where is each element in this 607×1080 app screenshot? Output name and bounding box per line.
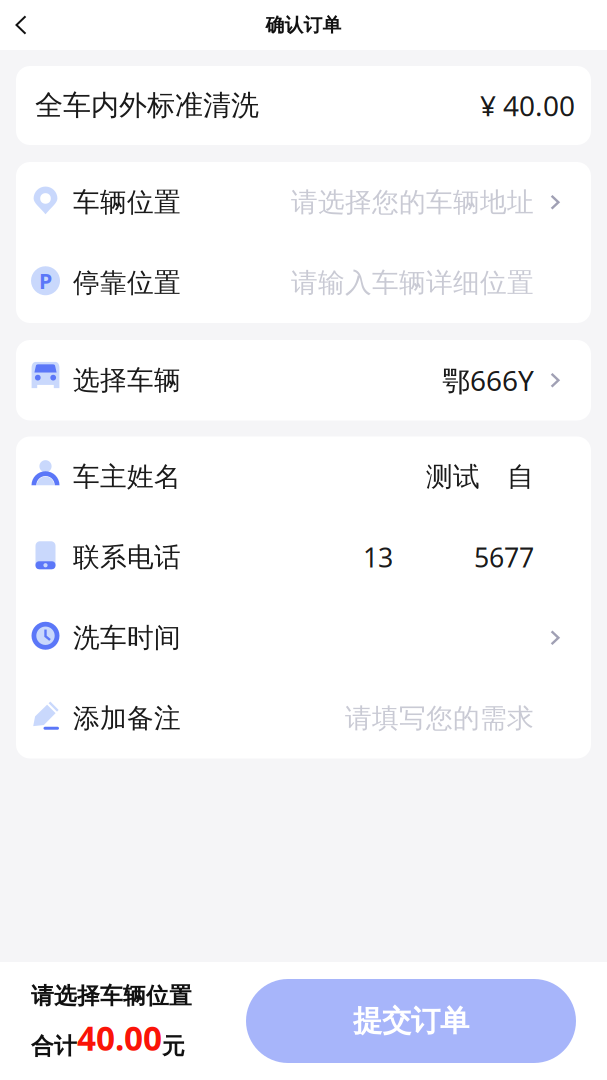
staticText: 车主姓名 (73, 460, 181, 493)
button[interactable]: P (16, 242, 591, 323)
staticText: 40.00 (77, 1016, 162, 1060)
staticText: 车辆位置 (73, 186, 181, 219)
staticText: 确认订单 (265, 13, 341, 36)
staticText: 联系电话 (73, 541, 181, 574)
staticText: 添加备注 (73, 702, 181, 735)
staticText: 请填写您的需求 (345, 702, 534, 735)
staticText: ¥ 40.00 (480, 87, 575, 124)
staticText: P (39, 267, 52, 295)
staticText: 13 (363, 539, 393, 575)
staticText: 请选择您的车辆地址 (291, 186, 534, 219)
button[interactable]: 联系电话 (16, 517, 591, 597)
staticText: 5677 (474, 539, 534, 575)
staticText: 测试 (426, 460, 480, 493)
staticText: 请选择车辆位置 (31, 982, 192, 1010)
staticText: 停靠位置 (73, 266, 181, 299)
button[interactable]: 添加备注 (16, 678, 591, 758)
staticText: 合计 (31, 1032, 77, 1060)
staticText: 洗车时间 (73, 621, 181, 654)
staticText: 自 (507, 460, 534, 493)
button[interactable]: 提交订单 (246, 979, 576, 1063)
button[interactable]: 选择车辆 (16, 340, 591, 420)
button[interactable]: 返回 (0, 0, 45, 50)
staticText: 选择车辆 (73, 364, 181, 397)
button[interactable]: 车辆位置 (16, 162, 591, 242)
staticText: 元 (162, 1032, 185, 1060)
button[interactable]: 洗车时间 (16, 597, 591, 678)
staticText: 请输入车辆详细位置 (291, 266, 534, 299)
button[interactable]: 车主姓名 (16, 436, 591, 517)
staticText: 提交订单 (353, 1003, 469, 1039)
staticText: 鄂666Y (442, 362, 534, 399)
staticText: 全车内外标准清洗 (35, 88, 259, 123)
